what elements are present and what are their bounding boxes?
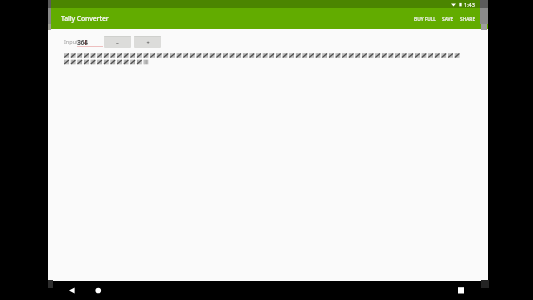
button[interactable]: BUY FULL: [411, 13, 439, 26]
staticText: +: [146, 39, 150, 46]
button[interactable]: SAVE: [439, 13, 457, 26]
staticText: SAVE: [442, 16, 454, 23]
button[interactable]: Recents: [455, 284, 469, 298]
button[interactable]: SHARE: [457, 13, 479, 26]
staticText: BUY FULL: [414, 16, 436, 23]
staticText: SHARE: [460, 16, 476, 23]
staticText: –: [116, 39, 119, 46]
staticText: 364: [77, 38, 88, 48]
button[interactable]: +: [134, 36, 161, 48]
staticText: 1:43: [464, 1, 475, 8]
staticText: Input:: [64, 38, 80, 45]
button[interactable]: Home: [92, 284, 106, 298]
staticText: Tally Converter: [61, 14, 109, 23]
button[interactable]: –: [104, 36, 131, 48]
button[interactable]: Back: [65, 284, 79, 298]
